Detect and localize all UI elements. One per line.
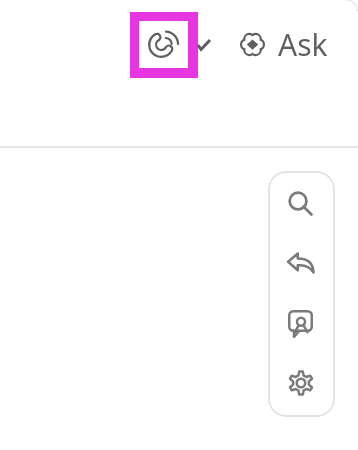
button[interactable]: Call <box>130 12 198 78</box>
staticText: Ask <box>278 24 328 65</box>
button[interactable]: Reply <box>277 239 324 285</box>
button[interactable]: Contact <box>278 298 323 350</box>
button[interactable]: Ask <box>240 24 328 65</box>
button[interactable]: Search <box>277 178 323 228</box>
button[interactable]: Settings <box>278 358 324 408</box>
